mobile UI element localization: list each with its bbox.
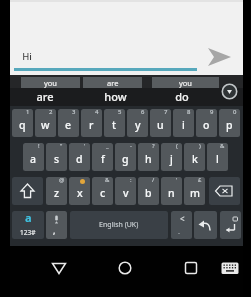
staticText: are (107, 78, 119, 88)
button[interactable]: q (12, 109, 33, 137)
button[interactable]: English (UK) (70, 211, 168, 239)
staticText: f (101, 152, 105, 166)
button[interactable]: z (46, 177, 67, 205)
button[interactable]: l (207, 143, 228, 171)
button[interactable]: w (35, 109, 56, 137)
button[interactable]: k (184, 143, 205, 171)
button[interactable] (194, 211, 217, 239)
staticText: ( (176, 143, 178, 150)
staticText: ' (84, 143, 86, 150)
staticText: 1 (26, 109, 30, 116)
staticText: 3 (72, 109, 76, 116)
staticText: h (145, 152, 152, 166)
staticText: k (192, 152, 198, 166)
staticText: q (19, 118, 26, 132)
staticText: " (60, 143, 63, 150)
staticText: w (41, 118, 50, 132)
staticText: a (25, 211, 32, 225)
button[interactable] (12, 177, 43, 205)
staticText: , (53, 224, 56, 236)
staticText: z (54, 186, 60, 200)
button[interactable]: j (161, 143, 182, 171)
button[interactable]: u (150, 109, 171, 137)
staticText: 6 (141, 109, 145, 116)
staticText: how (104, 89, 127, 104)
button[interactable]: c (92, 177, 113, 205)
button[interactable] (220, 260, 240, 276)
button[interactable]: t (104, 109, 125, 137)
staticText: t (112, 118, 117, 132)
staticText: 123# (20, 228, 36, 237)
staticText: ! (38, 143, 40, 150)
staticText: u (157, 118, 164, 132)
button[interactable]: r (81, 109, 102, 137)
staticText: l (216, 152, 219, 166)
button[interactable]: g (115, 143, 136, 171)
staticText: n (168, 186, 175, 200)
staticText: @ (59, 177, 65, 184)
button[interactable]: d (69, 143, 90, 171)
staticText: English (UK) (99, 220, 139, 230)
button[interactable]: < (171, 211, 192, 239)
button[interactable] (180, 258, 202, 278)
button[interactable]: you (21, 77, 80, 88)
staticText: o (203, 118, 210, 132)
staticText: £ (198, 177, 202, 184)
staticText: . (178, 226, 181, 236)
staticText: / (152, 177, 155, 184)
staticText: ) (199, 143, 201, 150)
staticText: a (30, 152, 37, 166)
staticText: p (226, 118, 233, 132)
button[interactable]: y (127, 109, 148, 137)
staticText: b (145, 186, 152, 200)
staticText: ' (176, 177, 178, 184)
staticText: 7 (164, 109, 168, 116)
button[interactable]: a (23, 143, 44, 171)
button[interactable]: v (115, 177, 136, 205)
button[interactable]: you (152, 77, 219, 88)
button[interactable]: h (138, 143, 159, 171)
staticText: 5 (118, 109, 122, 116)
staticText: c (100, 186, 106, 200)
staticText: i (182, 118, 185, 132)
staticText: x (77, 186, 83, 200)
button[interactable]: s (46, 143, 67, 171)
button[interactable]: b (138, 177, 159, 205)
staticText: s (54, 152, 60, 166)
staticText: j (170, 152, 173, 166)
button[interactable] (203, 45, 235, 69)
staticText: are (36, 89, 54, 104)
button[interactable]: are (83, 77, 142, 88)
button[interactable]: x (69, 177, 90, 205)
staticText: - (130, 143, 132, 150)
staticText: you (44, 78, 57, 88)
staticText: e (65, 118, 72, 132)
staticText: < (180, 213, 185, 224)
button[interactable] (209, 177, 240, 205)
button[interactable]: i (173, 109, 194, 137)
staticText: & (105, 177, 110, 184)
button[interactable]: p (219, 109, 240, 137)
button[interactable] (220, 211, 241, 239)
button[interactable]: m (184, 177, 205, 205)
button[interactable]: o (196, 109, 217, 137)
button[interactable]: a (12, 211, 44, 239)
staticText: v (123, 186, 129, 200)
staticText: you (179, 78, 192, 88)
button[interactable] (114, 258, 136, 278)
staticText: Hi (22, 50, 32, 63)
staticText: ? (152, 143, 155, 150)
button[interactable]: , (46, 211, 67, 239)
button[interactable] (48, 258, 70, 278)
button[interactable]: n (161, 177, 182, 205)
staticText: y (135, 118, 141, 132)
staticText: 9 (210, 109, 214, 116)
staticText: 0 (233, 109, 237, 116)
staticText: do (175, 89, 189, 104)
button[interactable]: f (92, 143, 113, 171)
staticText: : (130, 177, 132, 184)
button[interactable]: e (58, 109, 79, 137)
staticText: g (122, 152, 129, 166)
staticText: 4 (95, 109, 99, 116)
button[interactable] (221, 83, 238, 100)
